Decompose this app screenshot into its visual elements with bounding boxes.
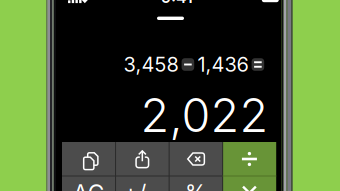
button[interactable]: Plus minus xyxy=(115,176,169,191)
button[interactable]: Divide xyxy=(223,142,276,176)
staticText: % xyxy=(185,179,207,191)
staticText: 2,022 xyxy=(140,87,268,143)
staticText: AC xyxy=(73,179,105,191)
staticText: 9:41 xyxy=(161,0,193,7)
button[interactable]: All clear xyxy=(62,176,115,191)
button[interactable]: Percent xyxy=(169,176,223,191)
button[interactable]: Delete xyxy=(169,142,223,176)
staticText: +/− xyxy=(123,179,161,191)
staticText: 1,436 xyxy=(197,52,248,77)
button[interactable]: Multiply xyxy=(223,176,276,191)
button[interactable]: Share xyxy=(115,142,169,176)
button[interactable]: Copy xyxy=(62,142,115,176)
staticText: 3,458 xyxy=(123,52,178,77)
